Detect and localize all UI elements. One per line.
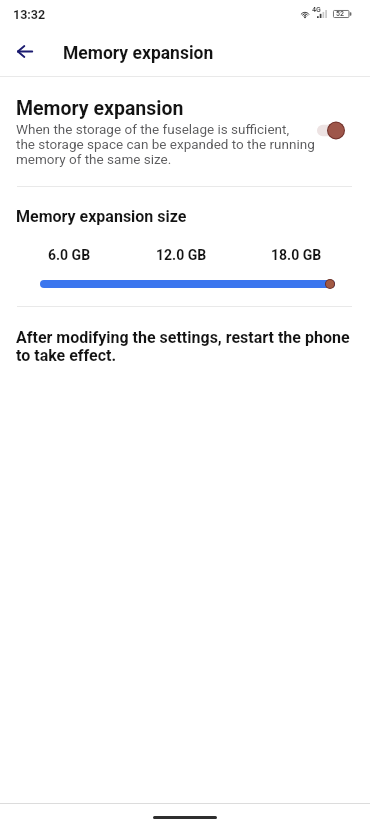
staticText: 18.0 GB: [271, 247, 322, 263]
button[interactable]: Memory expansion size slider: [40, 277, 335, 290]
staticText: Memory expansion size: [16, 207, 187, 226]
staticText: 52: [336, 10, 345, 18]
staticText: 13:32: [13, 7, 46, 22]
button[interactable]: Memory expansion toggle: [317, 121, 345, 140]
staticText: 12.0 GB: [156, 247, 207, 263]
button[interactable]: Back: [8, 35, 41, 68]
staticText: 4G: [312, 6, 321, 14]
staticText: When the storage of the fuselage is suff…: [16, 121, 290, 137]
staticText: the storage space can be expanded to the…: [16, 136, 315, 152]
staticText: Memory expansion: [63, 43, 214, 64]
staticText: memory of the same size.: [16, 151, 172, 167]
button[interactable]: Memory expansion: [0, 85, 370, 180]
staticText: Memory expansion: [16, 97, 184, 120]
staticText: 6.0 GB: [48, 247, 91, 263]
staticText: After modifying the settings, restart th…: [16, 328, 356, 365]
